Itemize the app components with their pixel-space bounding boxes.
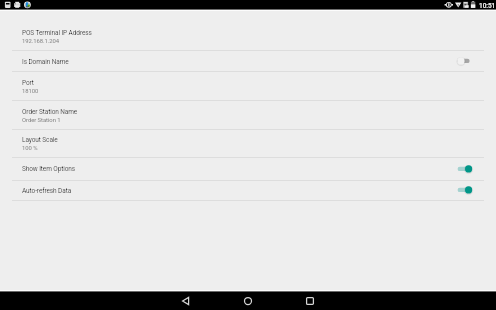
staticText: Is Domain Name [22, 58, 69, 66]
staticText: 100 % [22, 145, 38, 152]
button[interactable]: POS Terminal IP Address [0, 22, 496, 51]
staticText: 10:51 [479, 2, 496, 10]
staticText: Order Station 1 [22, 117, 61, 124]
staticText: POS Terminal IP Address [22, 29, 92, 37]
button[interactable]: Order Station Name [0, 101, 496, 130]
button[interactable]: Auto-refresh Data [0, 181, 496, 201]
staticText: Port [22, 79, 34, 87]
staticText: 192.168.1.204 [22, 38, 60, 45]
button[interactable]: Recent apps [279, 292, 341, 310]
staticText: Order Station Name [22, 108, 78, 116]
button[interactable]: Is Domain Name [0, 51, 496, 72]
button[interactable]: Port [0, 72, 496, 101]
button[interactable]: Layout Scale [0, 130, 496, 158]
button[interactable]: Show Item Options [0, 158, 496, 181]
staticText: Show Item Options [22, 165, 76, 173]
staticText: Auto-refresh Data [22, 187, 72, 195]
staticText: Layout Scale [22, 136, 58, 144]
button[interactable]: Home [217, 292, 279, 310]
button[interactable]: Back [155, 292, 217, 310]
staticText: 18100 [22, 88, 39, 95]
